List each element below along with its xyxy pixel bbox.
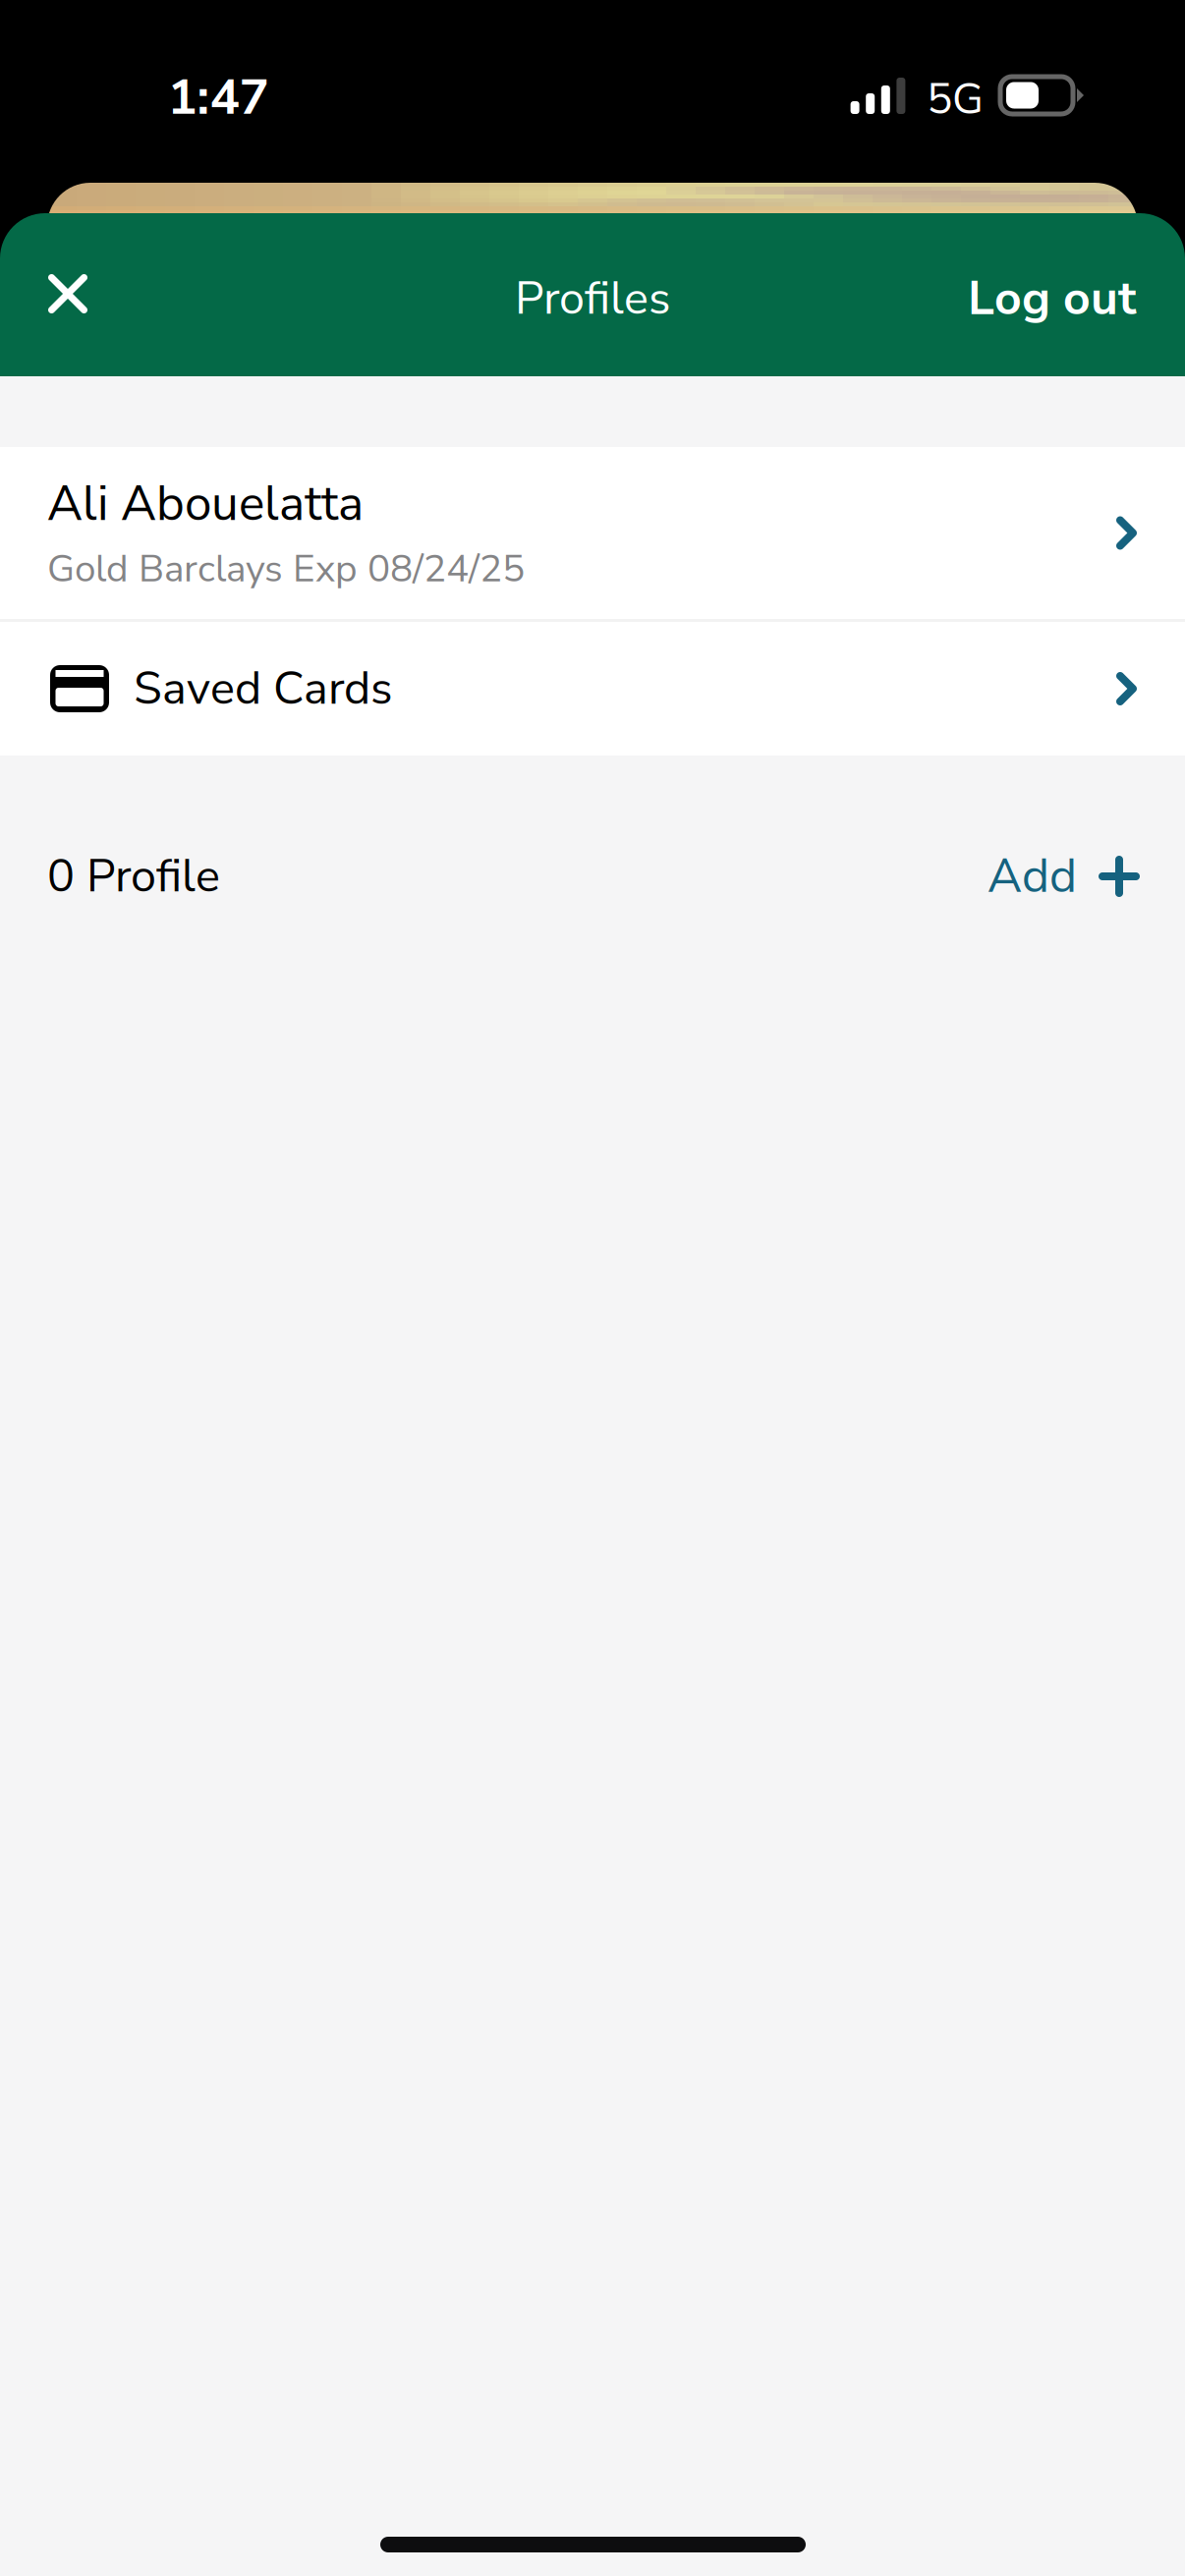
staticText: Profiles <box>515 267 670 330</box>
button[interactable]: Ali Abouelatta <box>0 447 1185 619</box>
staticText: Ali Abouelatta <box>47 471 364 537</box>
staticText: Add <box>987 844 1077 909</box>
staticText: 0 Profile <box>47 845 220 908</box>
staticText: Log out <box>968 267 1136 331</box>
button[interactable]: Log out <box>929 229 1185 368</box>
button[interactable]: Add <box>987 844 1140 909</box>
staticText: 5G <box>927 70 984 129</box>
staticText: Gold Barclays Exp 08/24/25 <box>47 543 525 595</box>
button[interactable]: Saved Cards <box>0 622 1185 756</box>
staticText: 1:47 <box>168 63 269 131</box>
staticText: Saved Cards <box>134 657 392 720</box>
button[interactable]: Close <box>0 242 127 356</box>
